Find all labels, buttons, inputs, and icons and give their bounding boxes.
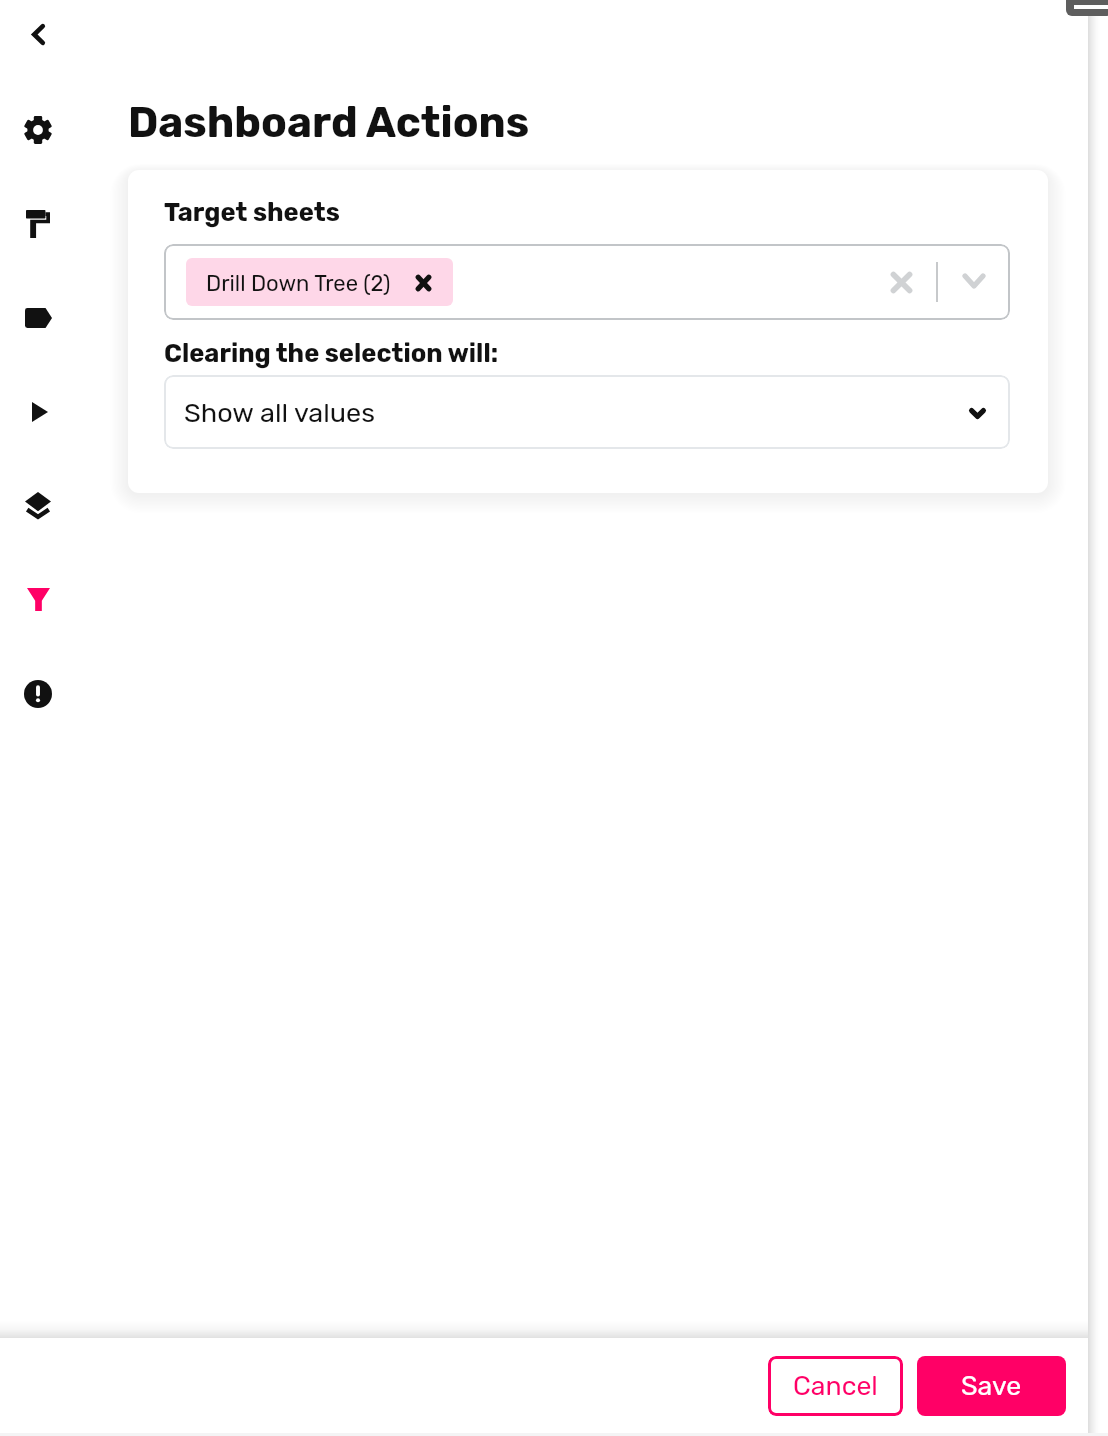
staticText: Clearing the selection will: (164, 338, 499, 368)
button[interactable]: Alerts (10, 666, 66, 722)
button[interactable]: Show all values (164, 375, 1010, 449)
button[interactable]: Clear selection (877, 258, 925, 306)
button[interactable]: Drill Down Tree (2) (164, 244, 1010, 320)
button[interactable]: Layers (10, 477, 66, 533)
button[interactable]: Bookmarks (10, 290, 66, 346)
button[interactable]: Play sheet (10, 384, 66, 440)
button[interactable]: Menu (1066, 0, 1108, 16)
button[interactable]: Save (917, 1356, 1066, 1416)
staticText: Save (961, 1370, 1022, 1402)
button[interactable]: Back (10, 6, 66, 62)
button[interactable]: Remove Drill Down Tree (408, 268, 438, 298)
button[interactable]: Appearance (10, 196, 66, 252)
button[interactable]: Open sheet list (950, 257, 998, 305)
staticText: Dashboard Actions (128, 97, 530, 147)
staticText: Show all values (184, 397, 375, 429)
staticText: Drill Down Tree (2) (206, 270, 391, 296)
staticText: Target sheets (164, 197, 340, 227)
button[interactable]: Filters (10, 571, 66, 627)
staticText: Cancel (793, 1370, 878, 1402)
button[interactable]: Drill Down Tree (2) (186, 258, 453, 306)
button[interactable]: Cancel (768, 1356, 903, 1416)
button[interactable]: Settings (10, 102, 66, 158)
button[interactable]: Open options (959, 395, 995, 431)
